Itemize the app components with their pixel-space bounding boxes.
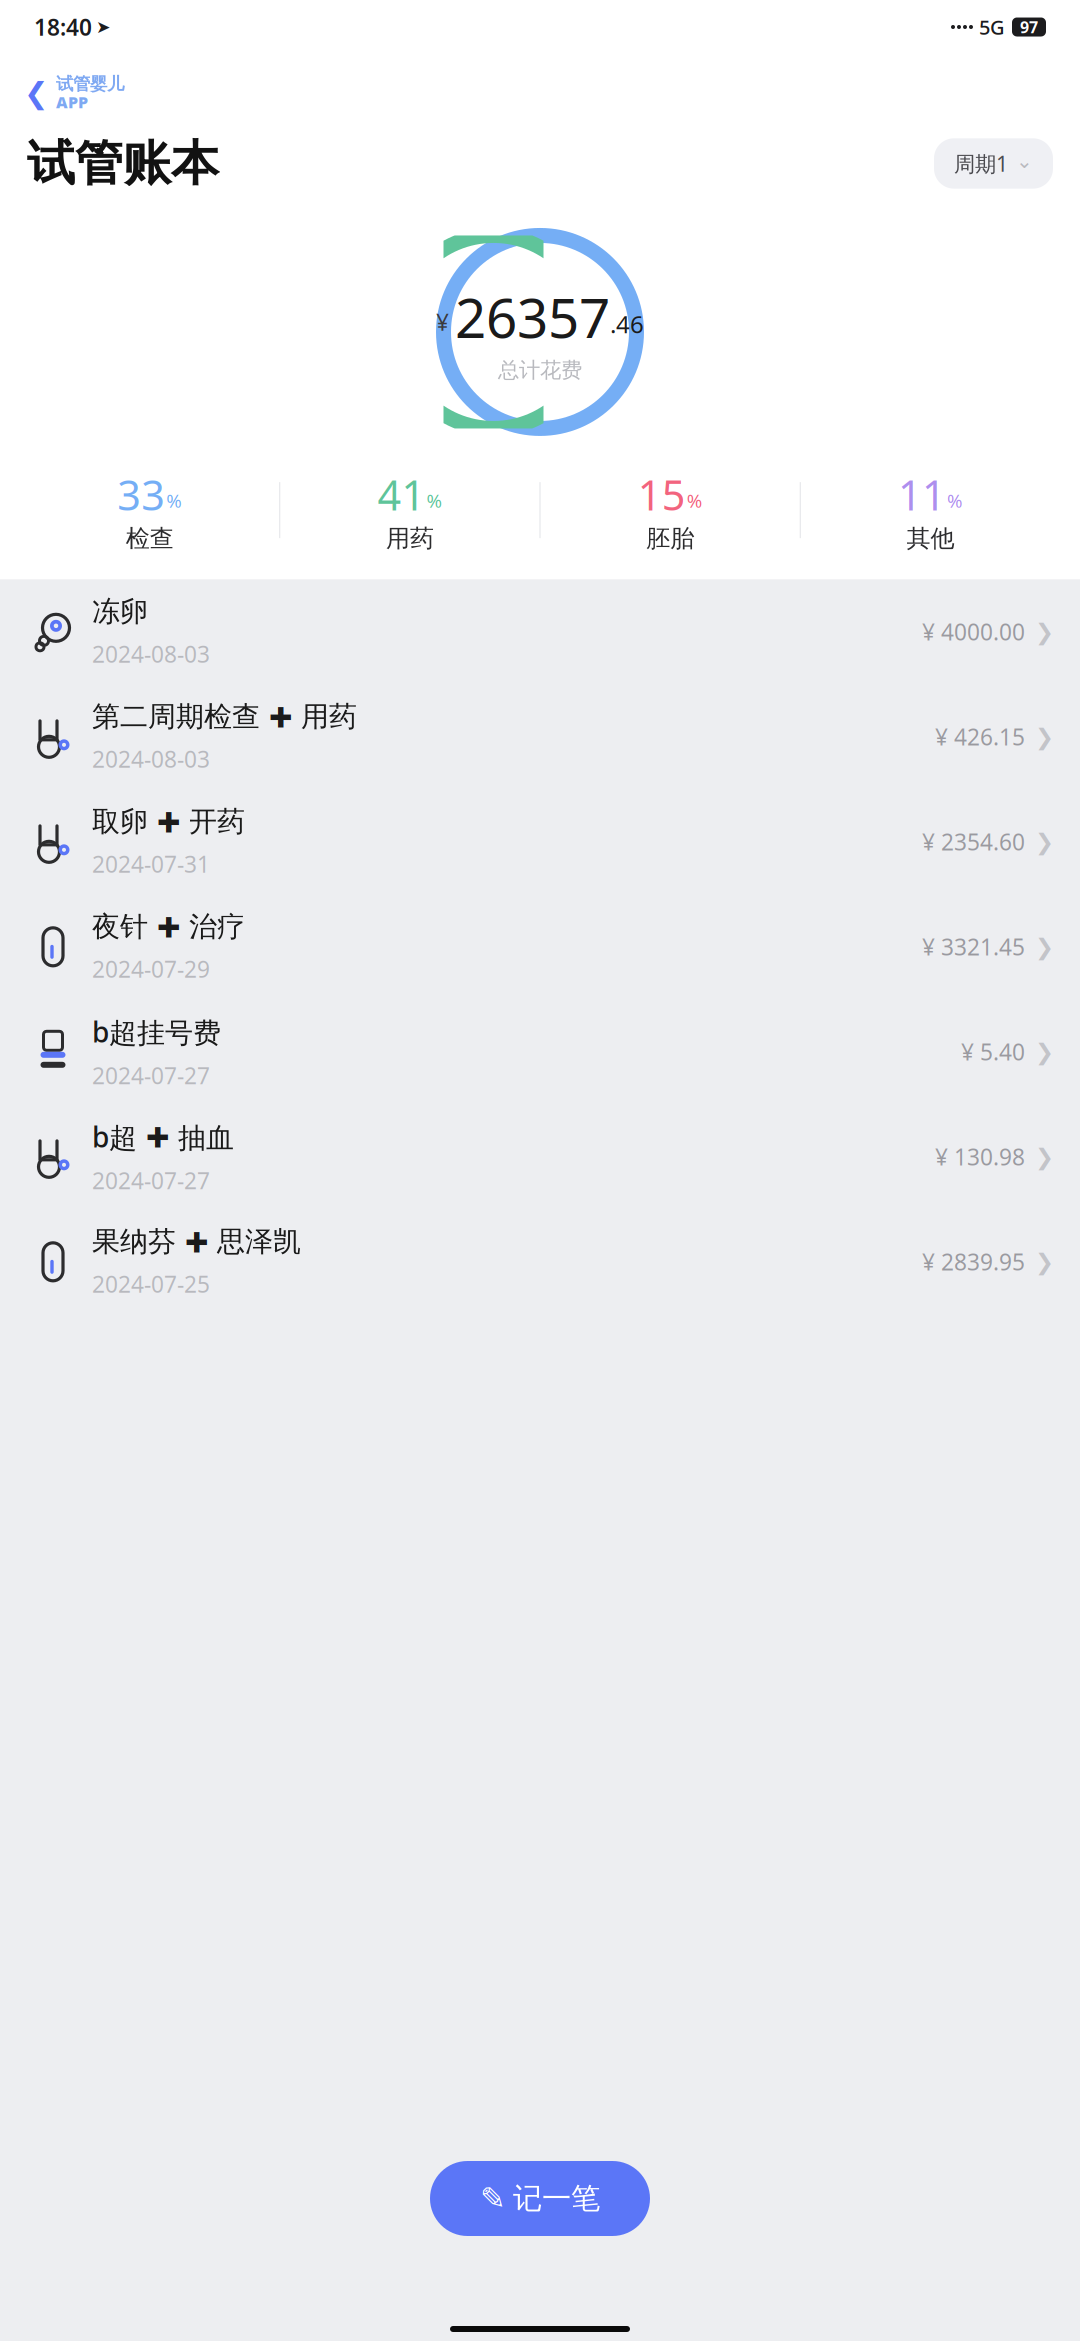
staticText: 胚胎	[646, 524, 694, 553]
staticText: 周期1	[954, 149, 1008, 178]
staticText: %	[166, 488, 182, 513]
staticText: 夜针 ✚ 治疗	[92, 910, 245, 944]
staticText: 18:40	[34, 12, 92, 42]
staticText: ¥ 5.40	[961, 1037, 1025, 1067]
staticText: %	[687, 488, 703, 513]
staticText: ❯	[1035, 1039, 1054, 1065]
staticText: 试管婴儿	[56, 73, 124, 94]
staticText: b超 ✚ 抽血	[92, 1118, 234, 1155]
staticText: 试管账本	[27, 134, 219, 193]
button[interactable]: b超挂号费	[0, 999, 1080, 1104]
staticText: 97	[1020, 16, 1038, 38]
staticText: 26357	[455, 281, 610, 353]
staticText: %	[947, 488, 963, 513]
staticText: 2024-07-29	[92, 954, 210, 984]
staticText: ❯	[1035, 934, 1054, 960]
staticText: 果纳芬 ✚ 思泽凯	[92, 1225, 301, 1259]
staticText: 第二周期检查 ✚ 用药	[92, 700, 357, 734]
button[interactable]: 取卵 ✚ 开药	[0, 789, 1080, 894]
staticText: ❮	[24, 76, 49, 110]
staticText: 2024-08-03	[92, 744, 210, 774]
staticText: ¥ 3321.45	[922, 932, 1025, 962]
button[interactable]: 果纳芬 ✚ 思泽凯	[0, 1209, 1080, 1314]
staticText: 2024-07-31	[92, 849, 210, 879]
staticText: ❯	[1035, 1144, 1054, 1170]
staticText: 取卵 ✚ 开药	[92, 805, 245, 839]
button[interactable]: 夜针 ✚ 治疗	[0, 894, 1080, 999]
button[interactable]: Back	[24, 73, 124, 113]
staticText: ❯	[1035, 724, 1054, 750]
staticText: 记一笔	[513, 2180, 600, 2216]
staticText: ¥	[436, 307, 449, 337]
staticText: ✎	[480, 2181, 506, 2216]
button[interactable]: ✎	[430, 2161, 650, 2236]
staticText: ❯	[1035, 1249, 1054, 1275]
staticText: 5G	[979, 14, 1005, 40]
staticText: ❯	[1035, 829, 1054, 855]
staticText: 11	[898, 467, 946, 522]
staticText: ¥ 4000.00	[922, 617, 1025, 647]
staticText: ⌄	[1016, 150, 1033, 172]
button[interactable]: 冻卵	[0, 579, 1080, 684]
staticText: 用药	[386, 524, 434, 553]
staticText: 检查	[126, 524, 174, 553]
staticText: 2024-07-27	[92, 1165, 210, 1195]
staticText: 其他	[906, 524, 954, 553]
staticText: 41	[377, 467, 425, 522]
staticText: ¥ 426.15	[935, 722, 1025, 752]
staticText: ¥ 2839.95	[922, 1247, 1025, 1277]
staticText: ➤	[96, 17, 111, 37]
staticText: 总计花费	[498, 357, 582, 383]
staticText: b超挂号费	[92, 1013, 221, 1050]
staticText: 2024-08-03	[92, 639, 210, 669]
staticText: 33	[117, 467, 165, 522]
staticText: 冻卵	[92, 595, 148, 629]
staticText: .46	[610, 308, 644, 340]
button[interactable]: 第二周期检查 ✚ 用药	[0, 684, 1080, 789]
staticText: 2024-07-25	[92, 1269, 210, 1299]
staticText: ¥ 2354.60	[922, 827, 1025, 857]
staticText: ❯	[1035, 619, 1054, 645]
button[interactable]: b超 ✚ 抽血	[0, 1104, 1080, 1209]
button[interactable]: 周期1	[934, 138, 1053, 189]
staticText: ¥ 130.98	[935, 1142, 1025, 1172]
staticText: APP	[56, 91, 88, 113]
staticText: 2024-07-27	[92, 1060, 210, 1090]
staticText: %	[426, 488, 442, 513]
staticText: 15	[638, 467, 686, 522]
